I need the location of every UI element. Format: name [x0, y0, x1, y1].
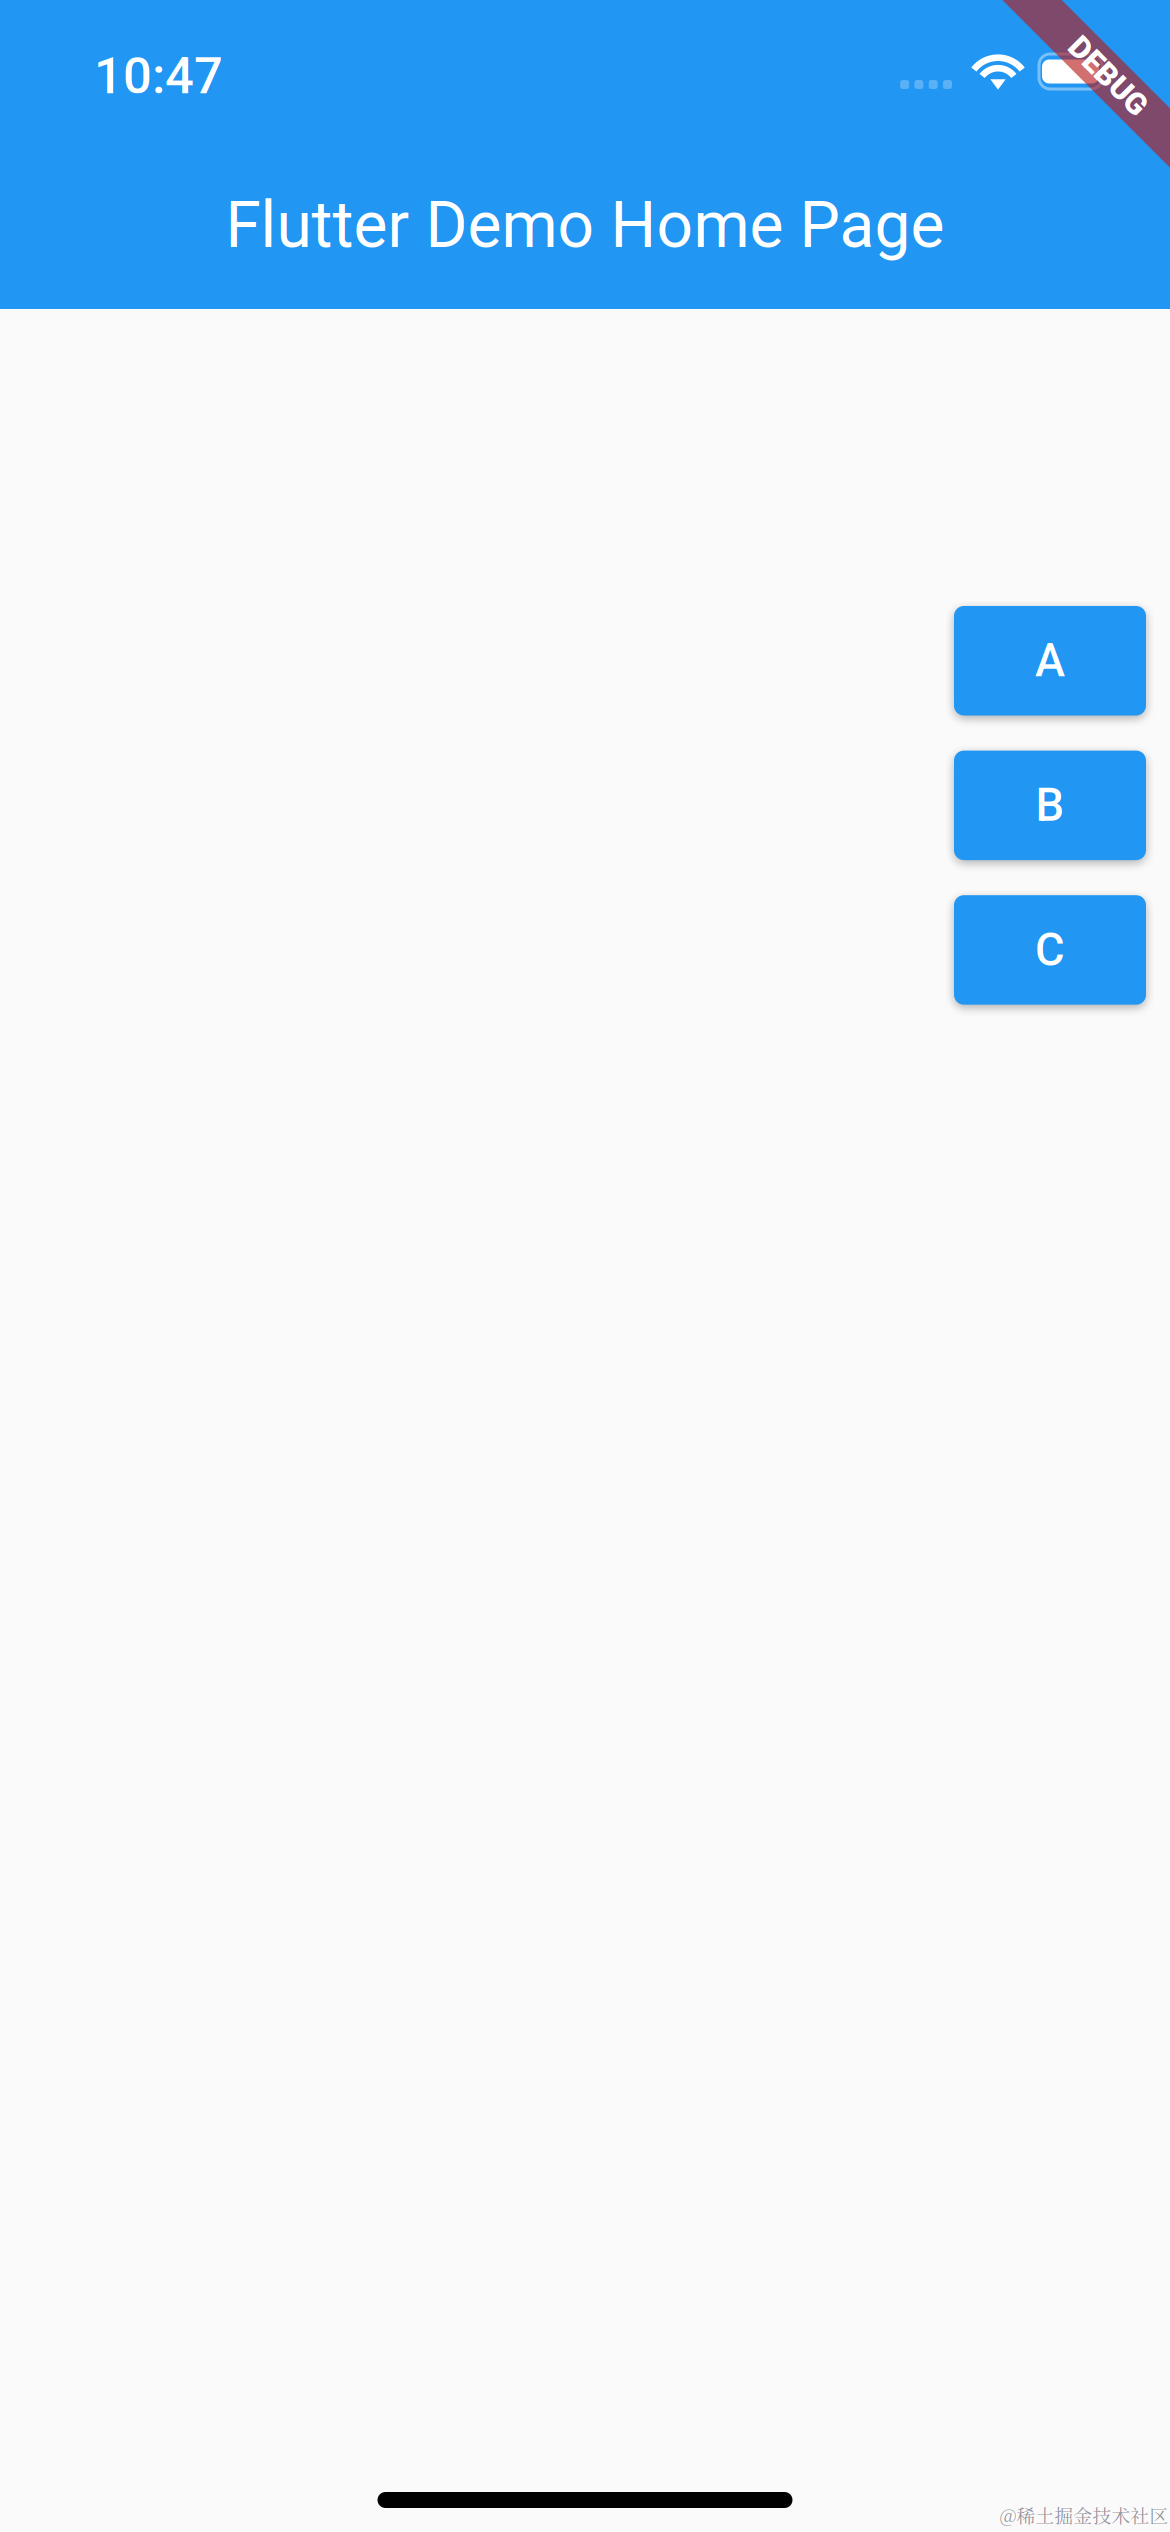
- staticText: Flutter Demo Home Page: [225, 187, 944, 262]
- button[interactable]: B: [954, 751, 1146, 860]
- staticText: DEBUG: [1059, 58, 1157, 94]
- staticText: @稀土掘金技术社区: [999, 2502, 1168, 2528]
- staticText: C: [1035, 923, 1065, 976]
- staticText: B: [1035, 779, 1064, 832]
- button[interactable]: A: [954, 606, 1146, 715]
- staticText: 10:47: [94, 46, 223, 106]
- staticText: A: [1035, 634, 1065, 687]
- button[interactable]: C: [954, 895, 1146, 1005]
